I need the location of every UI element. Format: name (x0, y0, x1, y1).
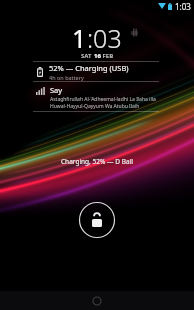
staticText: 16 (94, 52, 101, 60)
staticText: SAT (81, 52, 94, 60)
staticText: FEB (101, 52, 114, 60)
button[interactable]: Say (33, 82, 159, 111)
button[interactable]: Unlock (78, 201, 116, 239)
staticText: 1:03 (175, 1, 191, 12)
button[interactable]: 52% — Charging (USB) (33, 62, 159, 81)
staticText: Charging, 52% — D Ball (61, 157, 133, 166)
staticText: 4h on battery (49, 74, 84, 81)
button[interactable]: Home (89, 293, 105, 309)
staticText: 1 (72, 21, 87, 55)
staticText: Astaghfirullah Al-'Adheemal-ladhi La Ila… (50, 96, 159, 110)
staticText: 52% — Charging (USB) (49, 63, 129, 73)
staticText: :03 (87, 21, 122, 55)
staticText: Say (50, 85, 63, 95)
